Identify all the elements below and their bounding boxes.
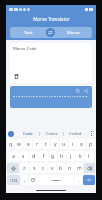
staticText: t [45, 141, 47, 148]
staticText: m [77, 165, 82, 172]
button[interactable]: g [49, 151, 57, 161]
button[interactable]: Morse [55, 27, 92, 38]
staticText: r [36, 141, 39, 148]
staticText: g [51, 153, 55, 160]
button[interactable]: Shift [7, 163, 19, 173]
button[interactable]: More options [89, 131, 94, 136]
staticText: f [43, 153, 45, 160]
button[interactable]: Enter [83, 175, 95, 185]
button[interactable]: Code [16, 129, 39, 138]
staticText: z [23, 165, 26, 172]
button[interactable]: Emoji [29, 175, 36, 185]
button[interactable]: Copy [10, 86, 92, 108]
button[interactable]: j [67, 151, 75, 161]
button[interactable]: a [9, 151, 18, 161]
staticText: d [32, 153, 36, 160]
staticText: a [12, 153, 15, 160]
button[interactable]: i [69, 139, 77, 149]
staticText: ?123 [10, 178, 18, 183]
staticText: u [62, 141, 66, 148]
staticText: h [60, 153, 64, 160]
staticText: Text [24, 30, 33, 36]
button[interactable]: r [33, 139, 41, 149]
button[interactable]: e [24, 139, 32, 149]
staticText: v [51, 165, 54, 172]
button[interactable]: l [85, 151, 93, 161]
button[interactable]: y [51, 139, 59, 149]
staticText: x [33, 165, 36, 172]
staticText: w [17, 141, 21, 148]
button[interactable]: b [57, 163, 65, 173]
button[interactable]: u [60, 139, 68, 149]
staticText: Morse Code [13, 46, 37, 52]
button[interactable]: f [39, 151, 48, 161]
staticText: p [89, 141, 93, 148]
button[interactable]: c [39, 163, 47, 173]
staticText: c [42, 165, 45, 172]
button[interactable]: Text [10, 27, 46, 38]
button[interactable]: w [15, 139, 23, 149]
button[interactable]: t [42, 139, 50, 149]
staticText: Morse Translator [33, 16, 70, 22]
button[interactable]: z [20, 163, 29, 173]
staticText: n [68, 165, 72, 172]
button[interactable]: v [48, 163, 56, 173]
button[interactable]: h [58, 151, 66, 161]
staticText: s [22, 153, 25, 160]
button[interactable]: Swap languages [46, 28, 55, 37]
button[interactable]: ?123 [7, 175, 20, 185]
staticText: Coded [69, 131, 82, 136]
button[interactable]: Clear text [13, 73, 20, 80]
staticText: i [72, 141, 74, 148]
button[interactable]: Share [83, 88, 89, 94]
staticText: o [80, 141, 84, 148]
staticText: b [59, 165, 63, 172]
staticText: . [78, 177, 80, 184]
button[interactable]: q [7, 139, 14, 149]
staticText: , [24, 177, 26, 184]
button[interactable]: Codes [40, 129, 63, 138]
button[interactable]: Backspace [84, 163, 95, 173]
staticText: l [88, 153, 90, 160]
staticText: q [9, 141, 13, 148]
button[interactable]: Morse Code [10, 43, 92, 83]
staticText: Code [23, 131, 33, 136]
button[interactable]: m [75, 163, 83, 173]
button[interactable]: Copy [75, 88, 81, 94]
button[interactable]: n [66, 163, 74, 173]
button[interactable]: Coded [64, 129, 87, 138]
staticText: Morse [67, 30, 80, 36]
button[interactable]: . [75, 175, 82, 185]
button[interactable]: Space [37, 175, 74, 185]
staticText: j [70, 153, 72, 160]
button[interactable]: x [30, 163, 38, 173]
button[interactable]: o [78, 139, 86, 149]
button[interactable]: Google [8, 131, 14, 137]
button[interactable]: k [76, 151, 84, 161]
button[interactable]: s [19, 151, 28, 161]
button[interactable]: , [21, 175, 28, 185]
staticText: e [27, 141, 30, 148]
button[interactable]: p [87, 139, 95, 149]
staticText: y [54, 141, 57, 148]
staticText: Codes [46, 131, 58, 136]
button[interactable]: d [29, 151, 38, 161]
staticText: k [79, 153, 82, 160]
